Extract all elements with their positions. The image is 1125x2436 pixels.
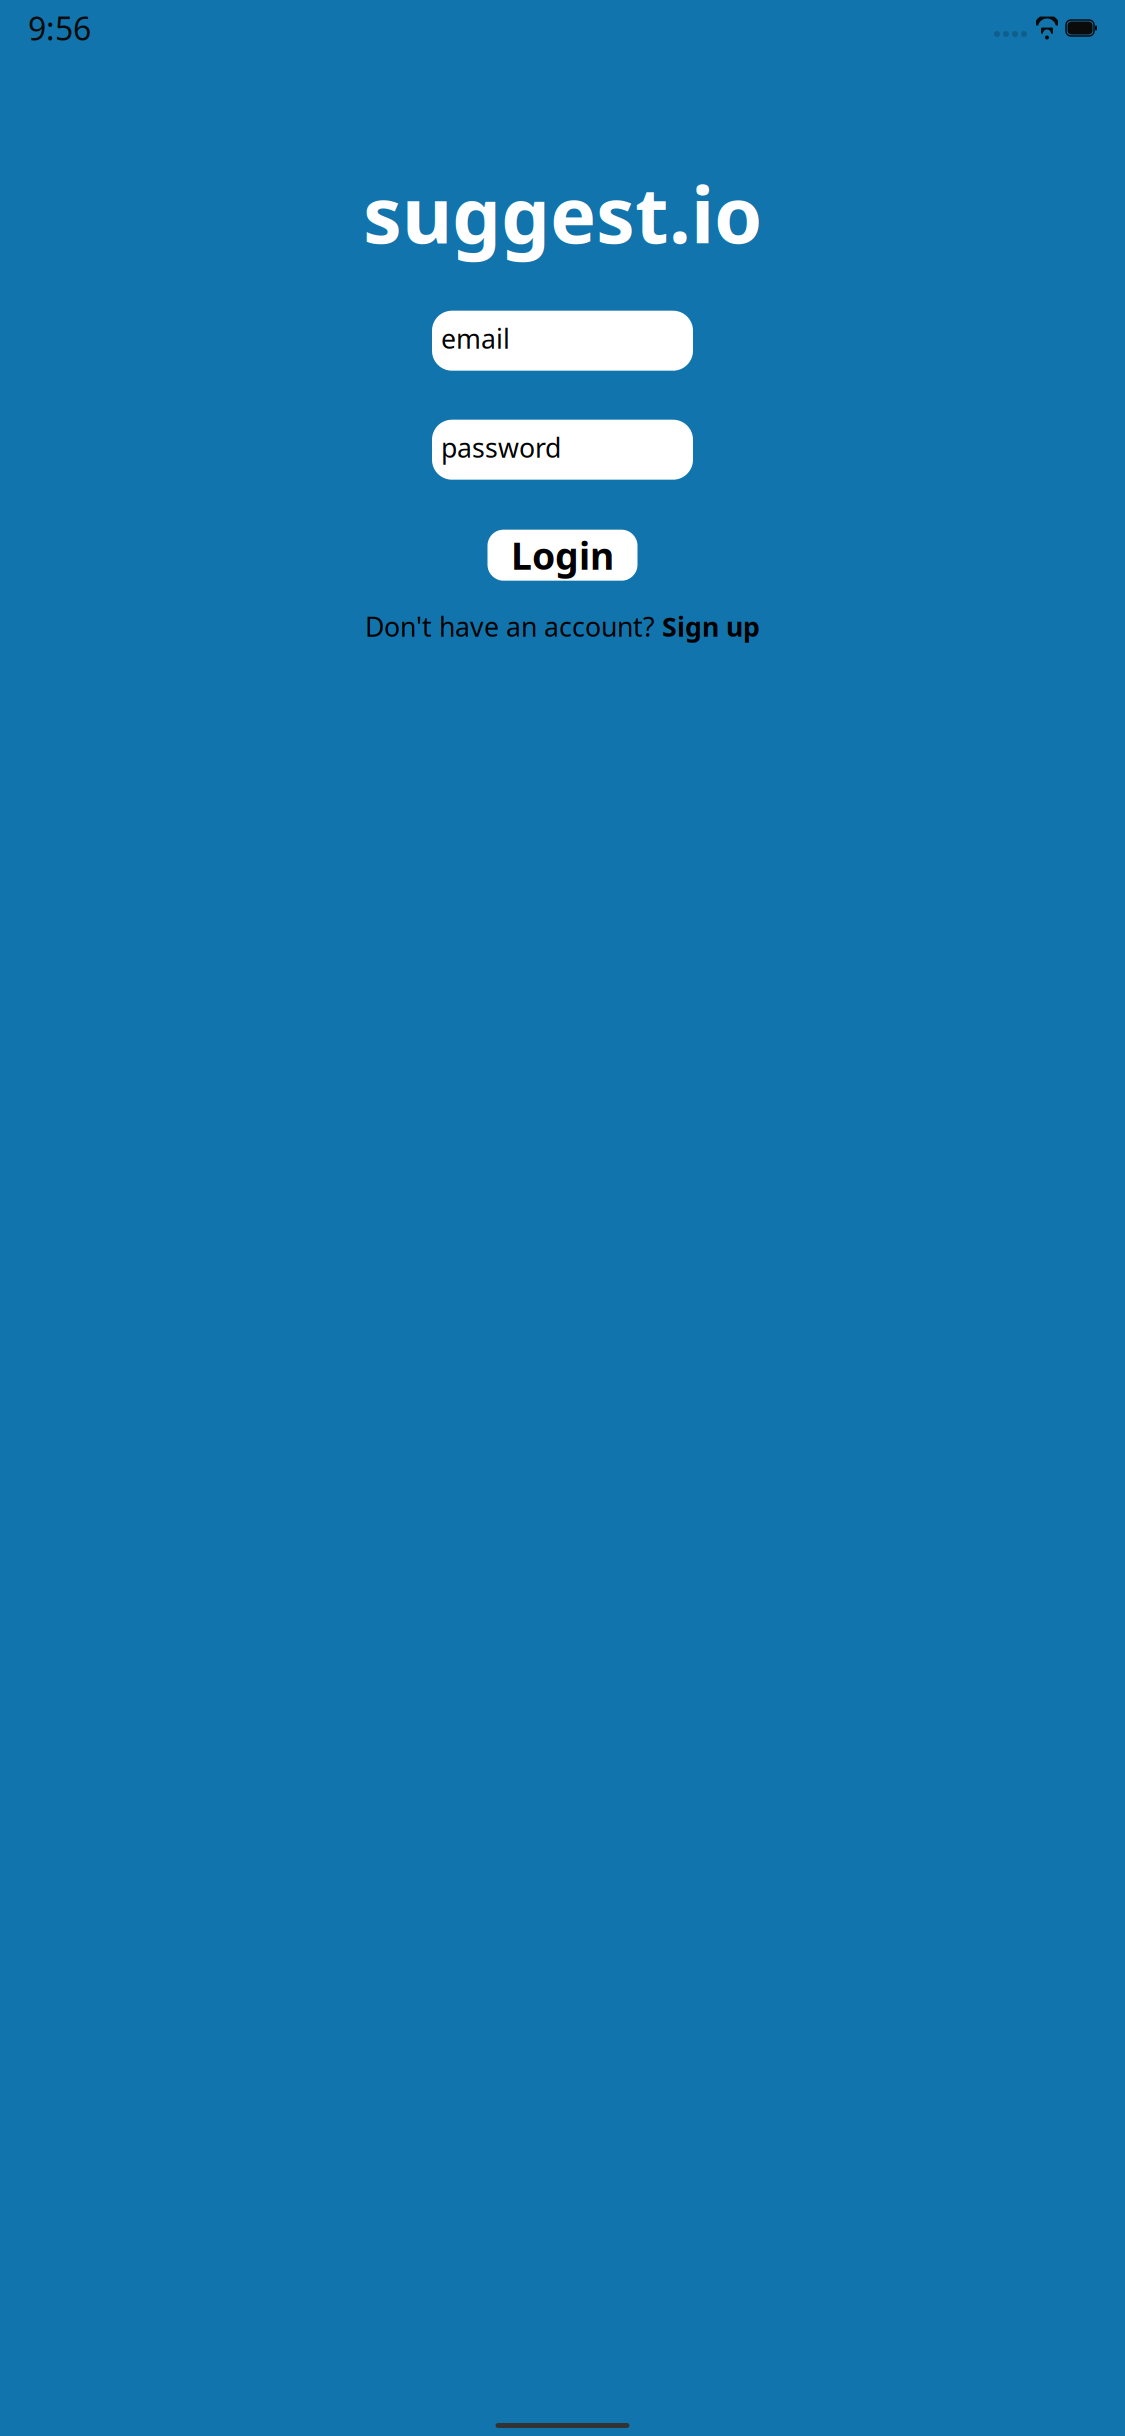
- staticText: Sign up: [662, 609, 760, 644]
- staticText: email: [441, 321, 510, 356]
- staticText: password: [441, 430, 561, 465]
- staticText: Don't have an account?: [365, 609, 662, 644]
- button[interactable]: password: [432, 420, 693, 480]
- button[interactable]: Don't have an account?: [357, 605, 768, 648]
- staticText: suggest.io: [363, 162, 762, 265]
- staticText: 9:56: [28, 7, 91, 49]
- button[interactable]: Login: [487, 530, 637, 581]
- button[interactable]: email: [432, 311, 693, 371]
- staticText: Login: [511, 530, 614, 580]
